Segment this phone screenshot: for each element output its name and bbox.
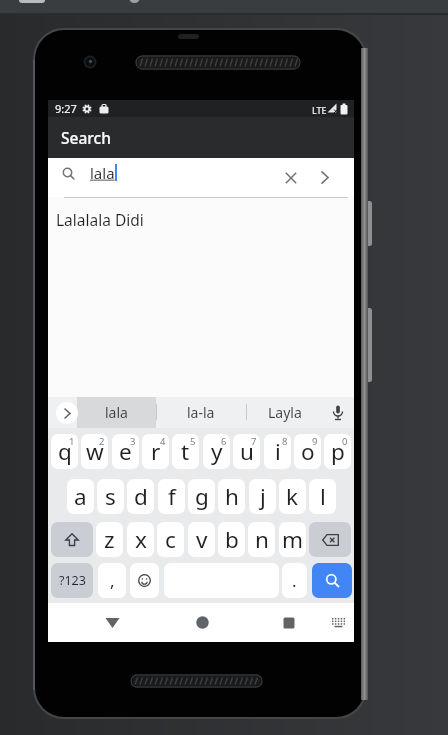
button[interactable]: a [67, 479, 94, 514]
staticText: v [196, 524, 208, 555]
button[interactable]: n [248, 522, 275, 557]
button[interactable]: la-la [156, 397, 245, 428]
button[interactable] [311, 160, 338, 195]
button[interactable] [277, 160, 304, 195]
button[interactable] [309, 522, 351, 557]
staticText: h [225, 481, 239, 512]
staticText: j [260, 481, 266, 512]
staticText: t [181, 436, 190, 467]
button[interactable] [130, 563, 159, 598]
staticText: p [331, 436, 345, 467]
staticText: , [110, 569, 115, 592]
button[interactable]: w [81, 434, 108, 469]
staticText: LTE [312, 104, 327, 116]
button[interactable]: e [112, 434, 139, 469]
button[interactable]: t [172, 434, 199, 469]
staticText: w [86, 436, 104, 467]
staticText: q [58, 436, 72, 467]
button[interactable]: q [51, 434, 78, 469]
button[interactable]: g [188, 479, 215, 514]
button[interactable] [96, 603, 129, 642]
button[interactable] [51, 522, 93, 557]
button[interactable]: lala [77, 397, 156, 428]
staticText: . [292, 569, 297, 592]
staticText: ?123 [59, 572, 86, 589]
button[interactable]: s [97, 479, 124, 514]
button[interactable]: d [127, 479, 154, 514]
button[interactable]: v [188, 522, 215, 557]
button[interactable]: m [279, 522, 306, 557]
button[interactable]: o [294, 434, 321, 469]
button[interactable]: i [264, 434, 291, 469]
button[interactable] [312, 563, 352, 598]
staticText: lala [90, 163, 115, 183]
staticText: m [282, 524, 304, 555]
staticText: l [320, 481, 326, 512]
staticText: e [119, 436, 132, 467]
staticText: 0 [342, 435, 348, 448]
button[interactable] [324, 603, 352, 642]
button[interactable]: r [142, 434, 169, 469]
button[interactable]: c [157, 522, 184, 557]
button[interactable]: Layla [247, 397, 322, 428]
staticText: s [105, 481, 116, 512]
staticText: 7 [251, 435, 257, 448]
staticText: c [165, 524, 176, 555]
button[interactable]: p [324, 434, 351, 469]
button[interactable]: j [249, 479, 276, 514]
button[interactable]: f [158, 479, 185, 514]
staticText: Lalalala Didi [56, 209, 144, 230]
staticText: o [301, 436, 315, 467]
staticText: i [275, 436, 281, 467]
staticText: 5 [190, 435, 196, 448]
button[interactable]: x [127, 522, 154, 557]
staticText: 9 [312, 435, 318, 448]
staticText: la-la [187, 403, 215, 422]
staticText: 2 [99, 435, 105, 448]
staticText: 1 [69, 435, 75, 448]
staticText: 4 [160, 435, 166, 448]
staticText: d [134, 481, 148, 512]
button[interactable] [56, 402, 78, 424]
button[interactable] [323, 397, 353, 428]
staticText: a [74, 481, 87, 512]
button[interactable]: b [218, 522, 245, 557]
button[interactable]: Lalalala Didi [48, 198, 354, 241]
staticText: z [104, 524, 115, 555]
staticText: 6 [221, 435, 227, 448]
staticText: b [225, 524, 239, 555]
button[interactable]: , [98, 563, 126, 598]
staticText: x [135, 524, 147, 555]
button[interactable]: y [203, 434, 230, 469]
staticText: Layla [268, 403, 302, 422]
button[interactable] [272, 603, 305, 642]
button[interactable]: l [309, 479, 336, 514]
button[interactable]: u [233, 434, 260, 469]
staticText: 8 [282, 435, 288, 448]
button[interactable] [186, 603, 219, 642]
button[interactable]: . [282, 563, 307, 598]
button[interactable]: lala [48, 158, 354, 197]
staticText: k [286, 481, 299, 512]
staticText: g [195, 481, 209, 512]
staticText: Search [61, 127, 111, 148]
button[interactable]: ?123 [51, 563, 93, 598]
staticText: f [168, 481, 176, 512]
staticText: u [240, 436, 254, 467]
staticText: r [151, 436, 161, 467]
staticText: 9:27 [55, 101, 77, 116]
button[interactable]: z [96, 522, 123, 557]
button[interactable]: k [279, 479, 306, 514]
button[interactable]: h [218, 479, 245, 514]
staticText: 3 [130, 435, 136, 448]
staticText: lala [105, 403, 128, 422]
staticText: y [211, 436, 223, 467]
staticText: n [255, 524, 269, 555]
